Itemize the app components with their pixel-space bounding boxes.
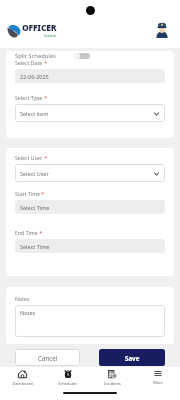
staticText: End Time <box>15 229 38 236</box>
staticText: * <box>43 154 48 161</box>
staticText: Start Time <box>15 190 40 197</box>
staticText: Select item <box>20 110 49 117</box>
button[interactable]: Save <box>99 349 165 366</box>
button[interactable]: Select User <box>15 164 165 182</box>
staticText: 22-06-2025 <box>20 73 49 80</box>
button[interactable]: Incidents <box>90 367 135 388</box>
staticText: Dashboard <box>12 381 33 386</box>
staticText: * <box>43 59 48 66</box>
staticText: Save <box>125 354 140 362</box>
staticText: Select Date <box>15 59 43 66</box>
button[interactable]: Split Schedules <box>15 51 90 60</box>
staticText: * <box>43 94 48 101</box>
staticText: Split Schedules <box>15 52 56 60</box>
staticText: Cancel <box>38 354 58 362</box>
staticText: Incidents <box>104 381 121 386</box>
button[interactable]: Select Time <box>15 200 165 214</box>
staticText: Select User <box>15 154 43 161</box>
button[interactable]: 22-06-2025 <box>15 69 165 83</box>
button[interactable]: Notes <box>15 305 165 337</box>
staticText: Solution <box>44 34 57 38</box>
staticText: * <box>38 229 43 236</box>
staticText: More <box>153 380 163 385</box>
staticText: Select Type <box>15 94 43 101</box>
staticText: Notes <box>15 295 30 302</box>
staticText: Select User <box>20 170 49 177</box>
staticText: * <box>40 190 45 197</box>
staticText: Notes <box>20 309 36 316</box>
button[interactable]: Select item <box>15 104 165 122</box>
staticText: Select Time <box>20 243 50 250</box>
button[interactable]: Profile <box>156 21 168 38</box>
staticText: Select Time <box>20 204 50 211</box>
staticText: OFFICER <box>22 22 57 34</box>
button[interactable]: Dashboard <box>0 367 45 388</box>
button[interactable]: More <box>135 367 180 388</box>
button[interactable]: Select Time <box>15 239 165 253</box>
button[interactable]: Cancel <box>15 349 80 366</box>
button[interactable]: Split Schedules toggle <box>74 52 90 59</box>
staticText: Schedules <box>58 381 77 386</box>
button[interactable]: Schedules <box>45 367 90 388</box>
